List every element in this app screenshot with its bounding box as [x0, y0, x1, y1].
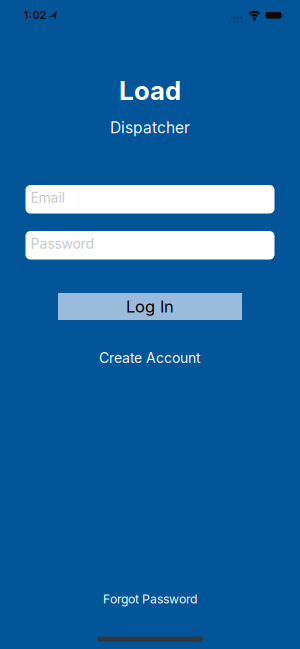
staticText: Forgot Password [103, 592, 197, 606]
button[interactable]: Log In [58, 293, 242, 320]
staticText: Dispatcher [110, 118, 190, 137]
staticText: Log In [126, 297, 174, 316]
staticText: Load [119, 75, 181, 106]
staticText: Password [30, 235, 94, 252]
staticText: 1:02 [23, 8, 46, 21]
staticText: Create Account [99, 350, 201, 366]
button[interactable]: Forgot Password [103, 590, 197, 608]
button[interactable]: Create Account [99, 348, 201, 368]
staticText: Email [30, 189, 64, 206]
